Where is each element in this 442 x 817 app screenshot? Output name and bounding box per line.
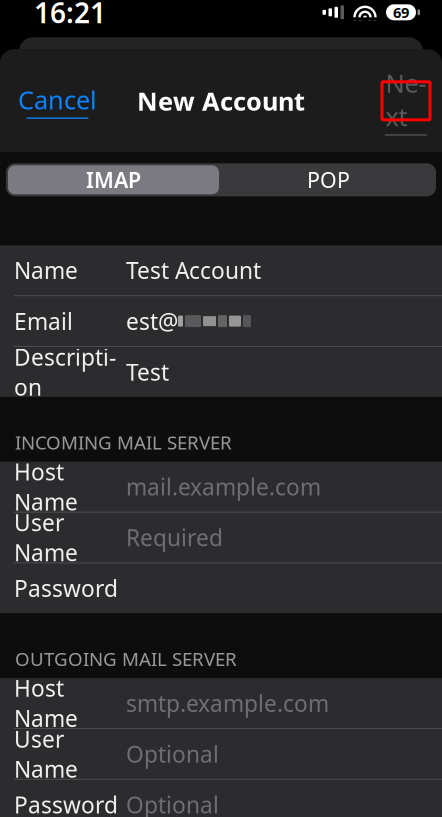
staticText: smtp.example.com xyxy=(126,688,329,718)
staticText: 16:21 xyxy=(34,0,106,31)
staticText: User Name xyxy=(14,724,78,784)
staticText: 69 xyxy=(393,3,409,22)
staticText: Host Name xyxy=(14,673,78,733)
button[interactable]: Password xyxy=(0,780,442,817)
button[interactable]: IMAP xyxy=(6,163,221,196)
staticText: Host Name xyxy=(14,457,78,517)
staticText: INCOMING MAIL SERVER xyxy=(15,430,232,455)
button[interactable]: User Name xyxy=(0,729,442,779)
button[interactable]: Host Name xyxy=(0,678,442,728)
staticText: Description xyxy=(14,342,116,402)
staticText: New Account xyxy=(137,84,305,118)
staticText: Cancel xyxy=(18,83,97,116)
button[interactable]: User Name xyxy=(0,512,442,562)
staticText: Email xyxy=(14,306,73,336)
staticText: User Name xyxy=(14,507,78,568)
staticText: Optional xyxy=(126,790,219,817)
staticText: POP xyxy=(307,166,350,194)
button[interactable]: Password xyxy=(0,563,442,613)
button[interactable]: Cancel xyxy=(10,73,105,129)
staticText: Next xyxy=(385,66,426,133)
staticText: est@ xyxy=(126,306,178,336)
staticText: Required xyxy=(126,522,223,552)
button[interactable]: Host Name xyxy=(0,462,442,512)
button[interactable]: Description xyxy=(0,347,442,397)
staticText: mail.example.com xyxy=(126,472,321,502)
staticText: OUTGOING MAIL SERVER xyxy=(15,646,237,671)
staticText: Password xyxy=(14,573,118,603)
staticText: Test xyxy=(126,357,169,387)
button[interactable]: Next xyxy=(382,82,430,120)
button[interactable]: POP xyxy=(221,163,436,196)
staticText: Name xyxy=(14,255,78,285)
button[interactable]: Name xyxy=(0,245,442,295)
staticText: Test Account xyxy=(126,255,261,285)
staticText: Optional xyxy=(126,739,219,769)
staticText: IMAP xyxy=(86,166,141,194)
button[interactable]: Email xyxy=(0,296,442,346)
staticText: Password xyxy=(14,790,118,817)
